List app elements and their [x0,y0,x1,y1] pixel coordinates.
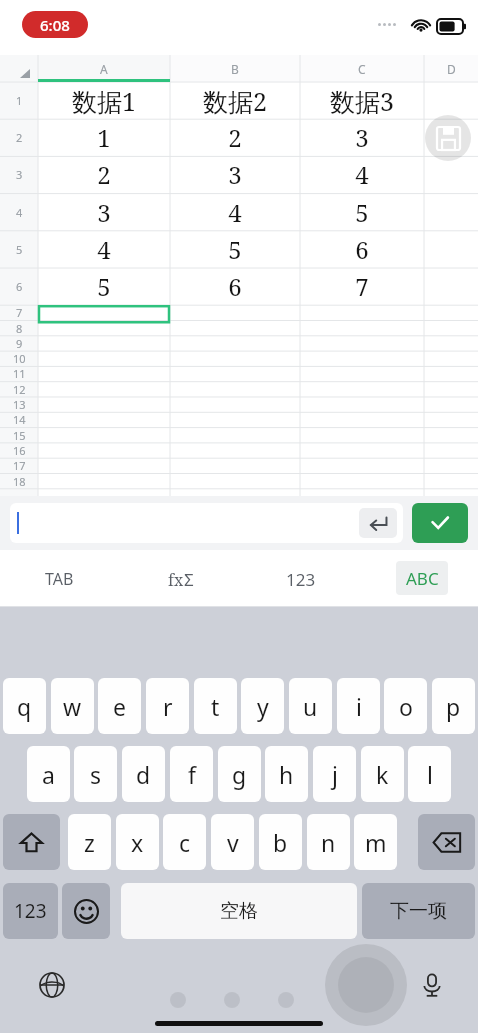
button[interactable]: x [116,814,159,870]
button[interactable]: Enter [359,508,397,538]
button[interactable]: 6 [170,268,300,305]
staticText: g [232,759,247,790]
button[interactable]: m [354,814,397,870]
button[interactable]: Voice input [412,965,452,1005]
staticText: 4 [228,196,242,229]
button[interactable]: c [163,814,206,870]
staticText: 5 [228,233,242,266]
button[interactable]: b [259,814,302,870]
button[interactable]: s [74,746,117,802]
staticText: 4 [97,233,111,266]
staticText: 123 [14,898,47,924]
button[interactable]: 空格 [121,883,357,939]
staticText: 2 [16,130,23,145]
button[interactable]: 下一项 [362,883,475,939]
button[interactable]: a [27,746,70,802]
button[interactable]: o [384,678,427,734]
staticText: 5 [355,196,369,229]
staticText: 空格 [220,899,258,923]
staticText: 9 [16,336,23,351]
button[interactable]: fx [150,564,212,594]
staticText: TAB [45,568,74,590]
staticText: 1 [16,93,23,108]
button[interactable]: f [170,746,213,802]
button[interactable]: k [361,746,404,802]
button[interactable]: 3 [38,194,170,231]
button[interactable]: z [68,814,111,870]
staticText: a [42,759,55,790]
button[interactable]: TAB [30,564,88,594]
staticText: w [63,691,82,722]
button[interactable]: q [3,678,46,734]
staticText: b [273,827,288,858]
button[interactable]: 123 [3,883,58,939]
button[interactable]: u [289,678,332,734]
staticText: 15 [13,428,26,443]
button[interactable]: 6 [300,231,424,268]
button[interactable]: 7 [300,268,424,305]
button[interactable]: Shift [3,814,60,870]
button[interactable]: e [98,678,141,734]
button[interactable]: A [94,59,114,79]
button[interactable]: l [408,746,451,802]
staticText: 7 [355,270,369,303]
button[interactable]: v [211,814,254,870]
button[interactable]: D [441,59,461,79]
staticText: q [17,691,32,722]
button[interactable]: d [122,746,165,802]
button[interactable]: 4 [170,194,300,231]
staticText: 数据3 [330,84,394,118]
button[interactable]: Emoji [62,883,110,939]
staticText: A [100,61,108,77]
staticText: h [279,759,294,790]
staticText: f [188,759,196,790]
button[interactable]: 5 [38,268,170,305]
button[interactable]: 数据1 [38,82,170,119]
button[interactable]: w [51,678,94,734]
button[interactable]: 2 [38,156,170,193]
button[interactable]: 1 [38,119,170,156]
button[interactable]: p [432,678,475,734]
staticText: ABC [406,567,439,590]
staticText: 3 [228,158,242,191]
button[interactable]: 3 [170,156,300,193]
staticText: 5 [97,270,111,303]
staticText: 3 [16,167,23,182]
staticText: y [257,691,269,722]
staticText: 7 [16,305,23,320]
staticText: C [358,61,366,77]
button[interactable]: 数据3 [300,82,424,119]
button[interactable]: ABC [396,561,448,595]
button[interactable]: i [337,678,380,734]
button[interactable]: 123 [272,564,330,594]
button[interactable]: Backspace [418,814,475,870]
button[interactable]: C [352,59,372,79]
button[interactable]: 4 [38,231,170,268]
button[interactable]: 3 [300,119,424,156]
button[interactable]: B [225,59,245,79]
button[interactable]: r [146,678,189,734]
staticText: B [231,61,239,77]
staticText: d [136,759,151,790]
button[interactable]: 2 [170,119,300,156]
staticText: n [321,827,336,858]
staticText: fx [168,569,184,591]
staticText: 17 [13,458,26,473]
button[interactable]: h [265,746,308,802]
staticText: 3 [97,196,111,229]
button[interactable]: n [307,814,350,870]
button[interactable]: y [241,678,284,734]
button[interactable]: Switch language [32,965,72,1005]
button[interactable]: Confirm [412,503,468,543]
button[interactable]: 4 [300,156,424,193]
staticText: 下一项 [390,899,447,923]
button[interactable]: j [313,746,356,802]
button[interactable]: 数据2 [170,82,300,119]
button[interactable]: g [218,746,261,802]
staticText: 14 [13,412,26,427]
button[interactable]: Save [425,115,471,161]
button[interactable]: Enter [10,503,403,543]
button[interactable]: t [194,678,237,734]
button[interactable]: 5 [300,194,424,231]
button[interactable]: 5 [170,231,300,268]
